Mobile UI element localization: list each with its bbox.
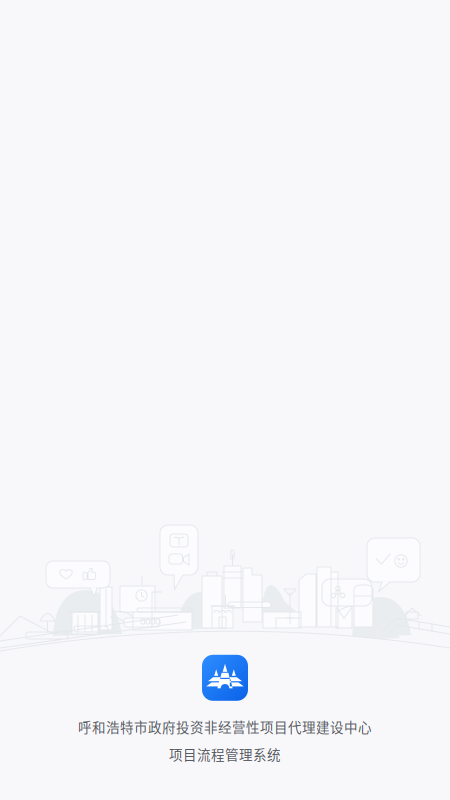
staticText: 呼和浩特市政府投资非经营性项目代理建设中心 xyxy=(78,717,372,736)
staticText: 项目流程管理系统 xyxy=(169,744,281,764)
